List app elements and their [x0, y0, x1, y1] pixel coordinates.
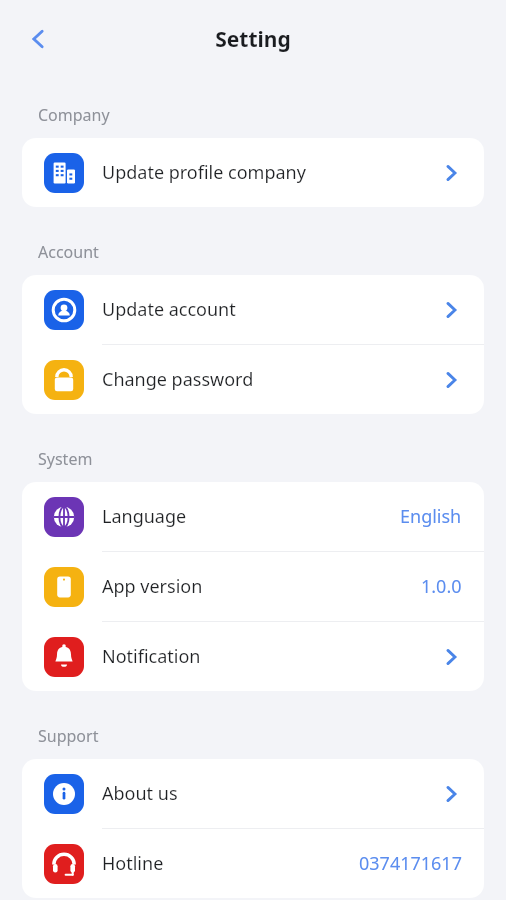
button[interactable]: App version	[22, 552, 484, 621]
staticText: Update account	[102, 297, 236, 322]
staticText: App version	[102, 574, 203, 599]
staticText: Company	[38, 104, 110, 126]
staticText: Change password	[102, 367, 254, 392]
button[interactable]: About us	[22, 759, 484, 828]
staticText: Setting	[215, 25, 291, 54]
staticText: Hotline	[102, 851, 164, 876]
button[interactable]: Hotline	[22, 829, 484, 898]
staticText: Language	[102, 504, 187, 529]
staticText: Support	[38, 725, 99, 747]
staticText: System	[38, 448, 93, 470]
button[interactable]: Language	[22, 482, 484, 551]
button[interactable]: Change password	[22, 345, 484, 414]
button[interactable]: Back	[14, 15, 62, 63]
button[interactable]: Update profile company	[22, 138, 484, 207]
button[interactable]: Update account	[22, 275, 484, 344]
staticText: English	[400, 504, 462, 529]
button[interactable]: Notification	[22, 622, 484, 691]
staticText: 0374171617	[359, 851, 462, 876]
staticText: Update profile company	[102, 160, 306, 185]
staticText: Notification	[102, 644, 201, 669]
staticText: About us	[102, 781, 178, 806]
staticText: 1.0.0	[421, 574, 462, 599]
staticText: Account	[38, 241, 99, 263]
